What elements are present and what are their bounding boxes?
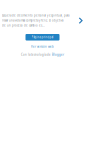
staticText: de un proceso de cambio es... bbox=[2, 24, 45, 27]
staticText: llevar una vida más completa y feliz. El… bbox=[2, 19, 64, 22]
button[interactable]: Página principal bbox=[25, 34, 59, 40]
staticText: Página principal bbox=[31, 35, 53, 39]
staticText: Blogger bbox=[52, 53, 64, 56]
staticText: Ver versión web bbox=[31, 45, 54, 48]
staticText: Escuela de crecimiento personal y espiri… bbox=[2, 14, 69, 17]
button[interactable]: Blogger bbox=[52, 53, 64, 56]
button[interactable]: Siguiente bbox=[78, 16, 83, 24]
staticText: Con la tecnología de bbox=[21, 53, 51, 56]
button[interactable]: Ver versión web bbox=[31, 45, 54, 48]
